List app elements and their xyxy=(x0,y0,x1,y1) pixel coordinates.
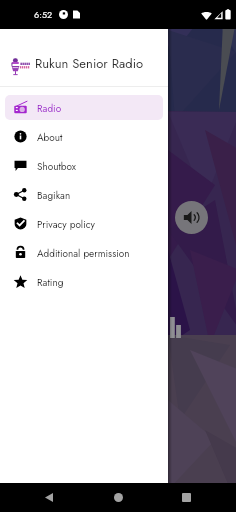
staticText: Bagikan xyxy=(37,188,71,202)
staticText: Rating xyxy=(37,275,64,289)
button[interactable]: Privacy policy xyxy=(5,211,163,236)
button[interactable]: Rating xyxy=(5,269,163,294)
button[interactable]: Home xyxy=(101,483,135,512)
button[interactable]: Shoutbox xyxy=(5,153,163,178)
staticText: Privacy policy xyxy=(37,217,95,231)
staticText: 6:52 xyxy=(34,8,53,21)
button[interactable]: Recent apps xyxy=(169,483,203,512)
button[interactable]: About xyxy=(5,124,163,149)
button[interactable]: Radio xyxy=(5,95,163,120)
staticText: Additional permission xyxy=(37,246,130,260)
staticText: Shoutbox xyxy=(37,159,77,173)
staticText: About xyxy=(37,130,63,144)
button[interactable]: Additional permission xyxy=(5,240,163,265)
staticText: Radio xyxy=(37,101,62,115)
button[interactable]: Volume xyxy=(175,201,208,234)
staticText: Rukun Senior Radio xyxy=(35,54,144,73)
button[interactable]: Back xyxy=(32,483,66,512)
button[interactable]: Bagikan xyxy=(5,182,163,207)
